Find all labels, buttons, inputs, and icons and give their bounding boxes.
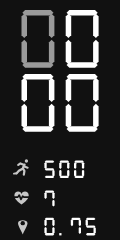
- button[interactable]: Workout timer 00:00, 500 steps, 7 bpm, 0…: [0, 0, 120, 240]
